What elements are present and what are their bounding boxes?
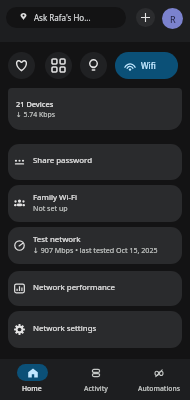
- staticText: Network settings: [33, 323, 97, 333]
- staticText: Ask Rafa's Ho...: [34, 12, 91, 23]
- button[interactable]: Automations: [127, 359, 190, 400]
- button[interactable]: Network performance: [8, 271, 182, 306]
- button[interactable]: Wifi: [115, 52, 178, 79]
- button[interactable]: Home: [0, 359, 64, 400]
- staticText: Not set up: [33, 203, 68, 212]
- staticText: 21 Devices: [16, 99, 54, 108]
- button[interactable]: Devices: [45, 52, 72, 79]
- staticText: Home: [22, 384, 42, 393]
- button[interactable]: Add device: [136, 8, 155, 27]
- staticText: Automations: [138, 384, 180, 393]
- staticText: Test network: [33, 234, 81, 244]
- button[interactable]: Family Wi-Fi: [8, 185, 182, 222]
- button[interactable]: 21 Devices: [8, 88, 182, 130]
- staticText: ↓ 5.74 Kbps: [16, 110, 56, 118]
- staticText: Family Wi-Fi: [33, 192, 78, 202]
- button[interactable]: Ask Rafa's Ho...: [6, 7, 126, 28]
- button[interactable]: Favorites: [8, 52, 35, 79]
- staticText: Network performance: [33, 282, 116, 292]
- staticText: Activity: [84, 384, 108, 393]
- button[interactable]: Network settings: [8, 311, 182, 348]
- staticText: ↓ 907 Mbps • last tested Oct 15, 2025: [33, 245, 158, 254]
- staticText: R: [170, 13, 176, 25]
- staticText: Share password: [33, 155, 93, 165]
- button[interactable]: Test network: [8, 227, 182, 264]
- button[interactable]: Activity: [64, 359, 127, 400]
- button[interactable]: Lights: [80, 52, 107, 79]
- staticText: Wifi: [141, 60, 156, 71]
- button[interactable]: Share password: [8, 144, 182, 180]
- button[interactable]: Account: [162, 8, 183, 29]
